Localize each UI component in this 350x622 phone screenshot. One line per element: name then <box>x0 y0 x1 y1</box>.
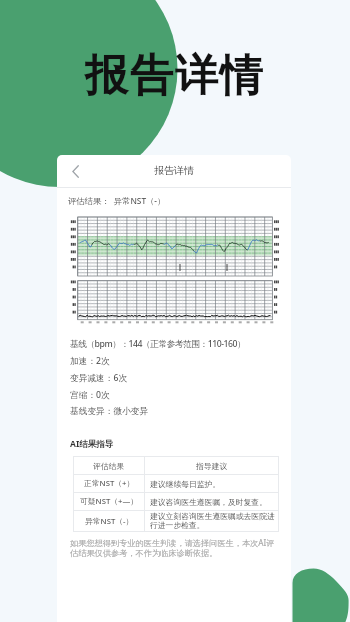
staticText: 报告详情 <box>154 164 194 177</box>
staticText: 指导建议 <box>196 461 228 471</box>
staticText: 变异减速：6次 <box>70 372 128 384</box>
staticText: 报告详情 <box>85 49 265 103</box>
staticText: 建议立刻咨询医生遵医嘱或去医院进行进一步检查。 <box>150 511 275 531</box>
staticText: 正常NST（+） <box>84 478 135 489</box>
staticText: 评估结果： 异常NST（-） <box>68 195 166 206</box>
staticText: 基线（bpm）：144（正常参考范围：110-160） <box>70 338 246 350</box>
staticText: 异常NST（-） <box>85 516 134 527</box>
button[interactable]: Back <box>62 158 88 184</box>
staticText: 如果您想得到专业的医生判读，请选择问医生，本次AI评估结果仅供参考，不作为临床诊… <box>70 537 276 558</box>
staticText: AI结果指导 <box>70 438 114 450</box>
staticText: 宫缩：0次 <box>70 389 110 401</box>
staticText: 可疑NST（+—） <box>80 496 139 507</box>
staticText: 加速：2次 <box>70 355 110 367</box>
staticText: 评估结果 <box>93 461 125 471</box>
staticText: 建议咨询医生遵医嘱，及时复查。 <box>150 497 267 507</box>
staticText: 建议继续每日监护。 <box>150 479 221 489</box>
staticText: 基线变异：微小变异 <box>70 406 149 417</box>
